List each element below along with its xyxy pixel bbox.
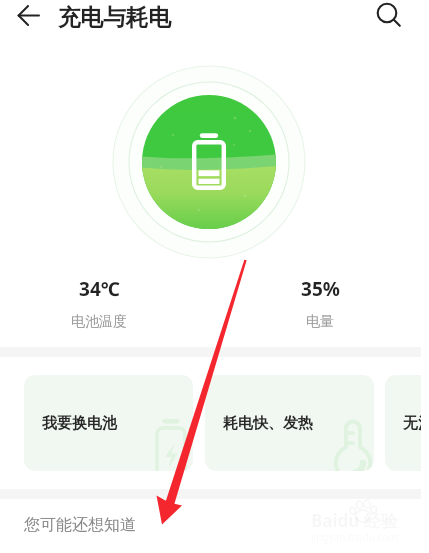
button[interactable]: Search (369, 0, 409, 35)
staticText: 无法充电 (403, 414, 421, 433)
staticText: 我要换电池 (42, 414, 117, 433)
staticText: 35% (301, 276, 340, 302)
staticText: 耗电快、发热 (223, 414, 313, 433)
staticText: 34℃ (79, 276, 120, 302)
button[interactable]: Back (8, 0, 48, 35)
button[interactable]: 我要换电池 (24, 375, 193, 471)
staticText: 电池温度 (71, 313, 127, 331)
staticText: 充电与耗电 (58, 3, 171, 31)
staticText: Baidu 经验 (311, 509, 398, 532)
button[interactable]: 35% (260, 276, 380, 331)
button[interactable]: 耗电快、发热 (205, 375, 374, 471)
button[interactable]: 您可能还想知道 (24, 515, 136, 535)
button[interactable]: 34℃ (39, 276, 159, 331)
button[interactable]: 无法充电 (385, 375, 421, 471)
staticText: 电量 (306, 313, 334, 331)
